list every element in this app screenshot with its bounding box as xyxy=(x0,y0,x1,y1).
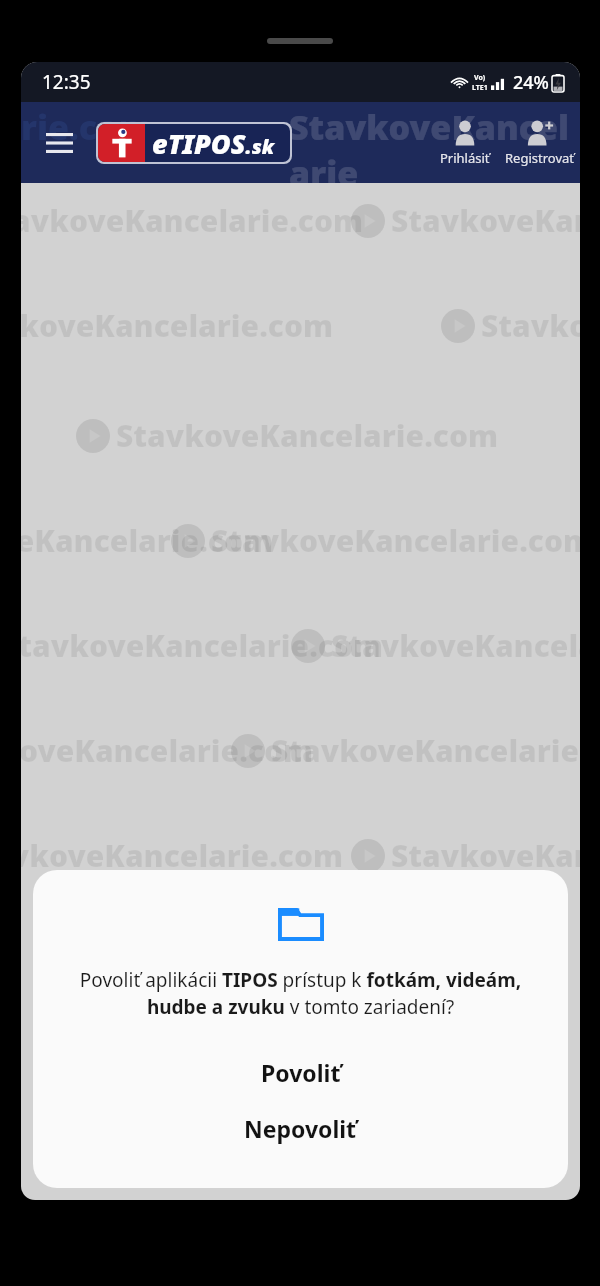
button[interactable]: Povoliť xyxy=(33,1050,568,1094)
staticText: Nepovoliť xyxy=(244,1113,357,1144)
staticText: StavkoveKancelarie.com xyxy=(391,200,580,241)
staticText: 12:35 xyxy=(42,69,91,95)
staticText: StavkoveKancelarie.com xyxy=(21,200,364,241)
staticText: StavkoveKancelarie.com xyxy=(271,730,580,771)
staticText: StavkoveKancelarie.com xyxy=(21,305,334,346)
staticText: eTIPOS.sk xyxy=(152,125,275,162)
staticText: StavkoveKancelarie.com xyxy=(481,305,580,346)
staticText: 24% xyxy=(513,70,549,95)
staticText: rie.com xyxy=(21,104,153,150)
staticText: StavkoveKancelarie.com xyxy=(21,625,384,666)
button[interactable]: Prihlásiť xyxy=(428,102,502,183)
staticText: StavkoveKancelarie.com xyxy=(211,520,580,561)
staticText: StavkoveKancelarie.com xyxy=(21,520,274,561)
button[interactable]: Registrovať xyxy=(502,102,576,183)
staticText: StavkoveKancelarie.com xyxy=(116,415,499,456)
staticText: StavkoveKancelarie.com xyxy=(21,835,344,876)
staticText: Registrovať xyxy=(505,149,574,167)
button[interactable]: Nepovoliť xyxy=(33,1106,568,1150)
staticText: Prihlásiť xyxy=(440,149,490,167)
button[interactable]: Menu xyxy=(35,119,83,167)
button[interactable]: eTIPOS.sk xyxy=(98,124,290,162)
staticText: StavkoveKancelarie.com xyxy=(331,625,580,666)
staticText: Vo) xyxy=(474,73,486,83)
staticText: LTE1 xyxy=(472,83,488,93)
staticText: Povoliť aplikácii TIPOS prístup k fotkám… xyxy=(61,967,540,1020)
staticText: StavkoveKancelarie xyxy=(289,104,580,183)
staticText: StavkoveKancelarie.com xyxy=(21,730,314,771)
staticText: Povoliť xyxy=(261,1057,341,1088)
staticText: StavkoveKancelarie.com xyxy=(391,835,580,876)
